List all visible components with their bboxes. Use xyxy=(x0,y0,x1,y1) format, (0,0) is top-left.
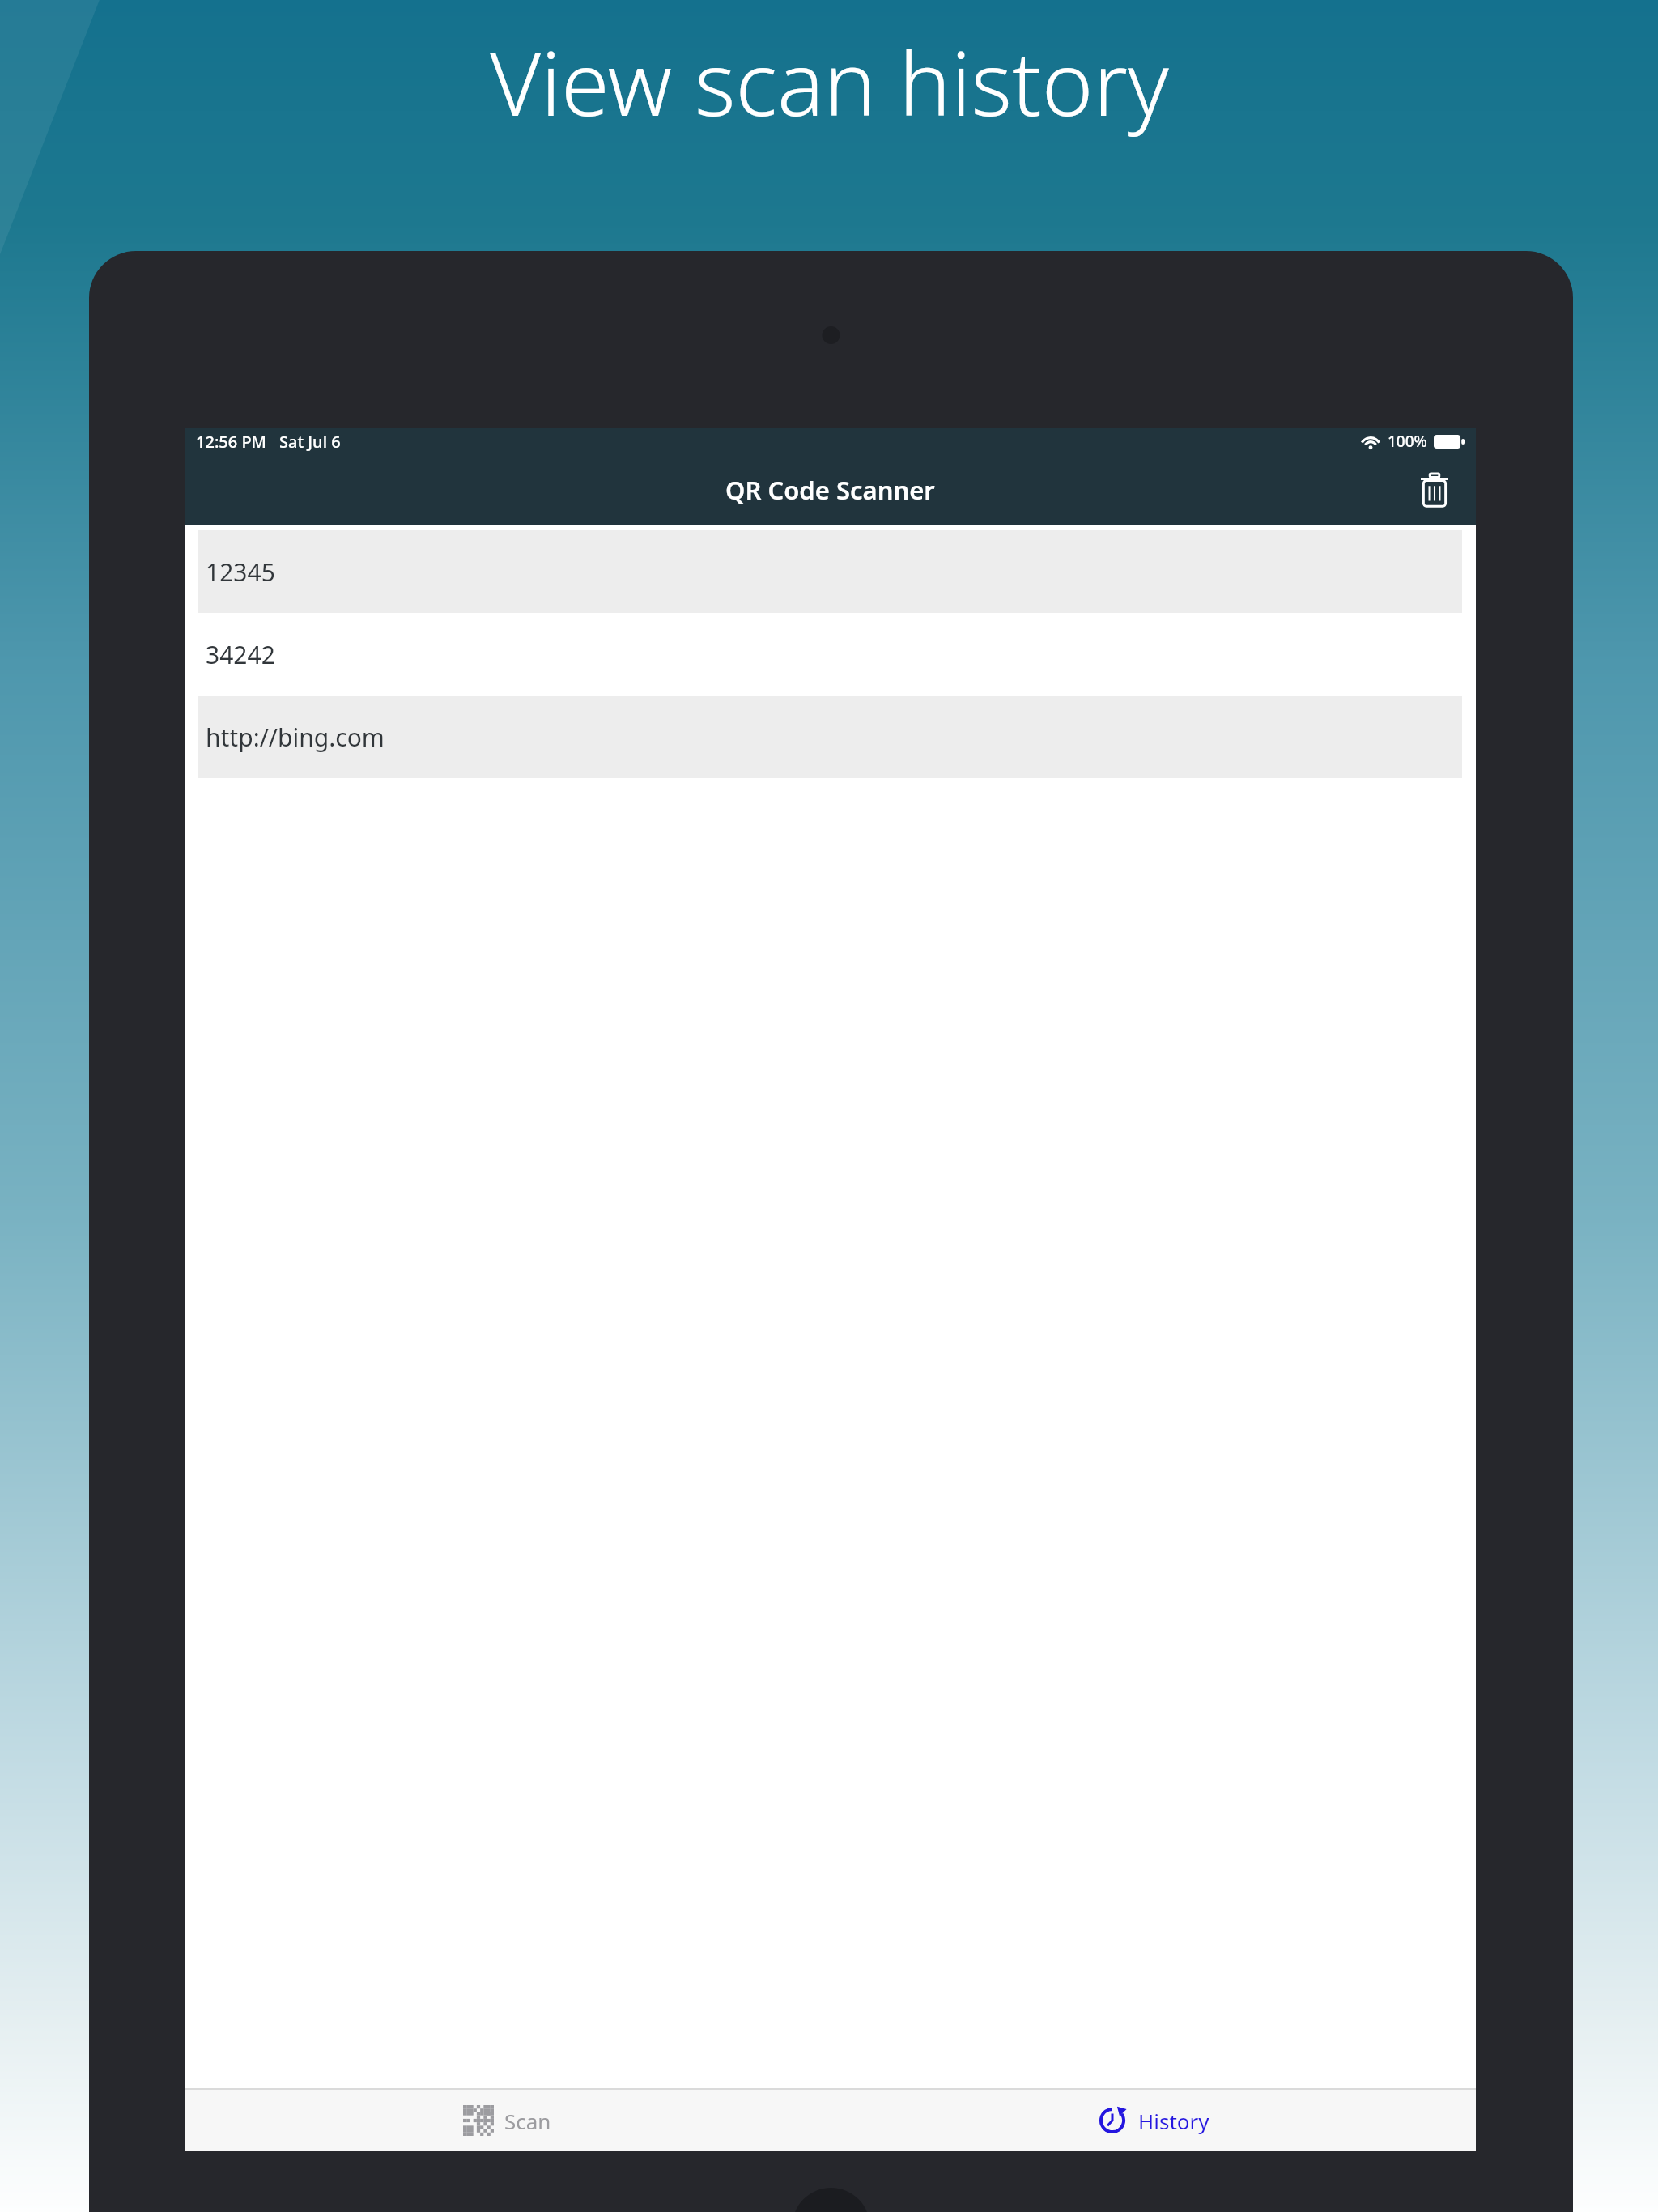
button[interactable]: History xyxy=(830,2090,1476,2151)
staticText: QR Code Scanner xyxy=(725,473,935,507)
staticText: Scan xyxy=(504,2107,551,2135)
staticText: 12345 xyxy=(206,555,275,589)
staticText: History xyxy=(1138,2107,1209,2135)
staticText: 100% xyxy=(1388,431,1427,452)
staticText: Sat Jul 6 xyxy=(279,431,341,453)
staticText: 12:56 PM xyxy=(196,431,266,453)
staticText: View scan history xyxy=(490,23,1169,142)
button[interactable]: 12345 xyxy=(198,530,1462,613)
staticText: 34242 xyxy=(206,638,275,671)
button[interactable]: http://bing.com xyxy=(198,696,1462,778)
button[interactable]: 34242 xyxy=(198,613,1462,696)
button[interactable]: Delete history xyxy=(1408,463,1461,517)
button[interactable]: Scan xyxy=(185,2090,830,2151)
staticText: http://bing.com xyxy=(206,721,385,754)
